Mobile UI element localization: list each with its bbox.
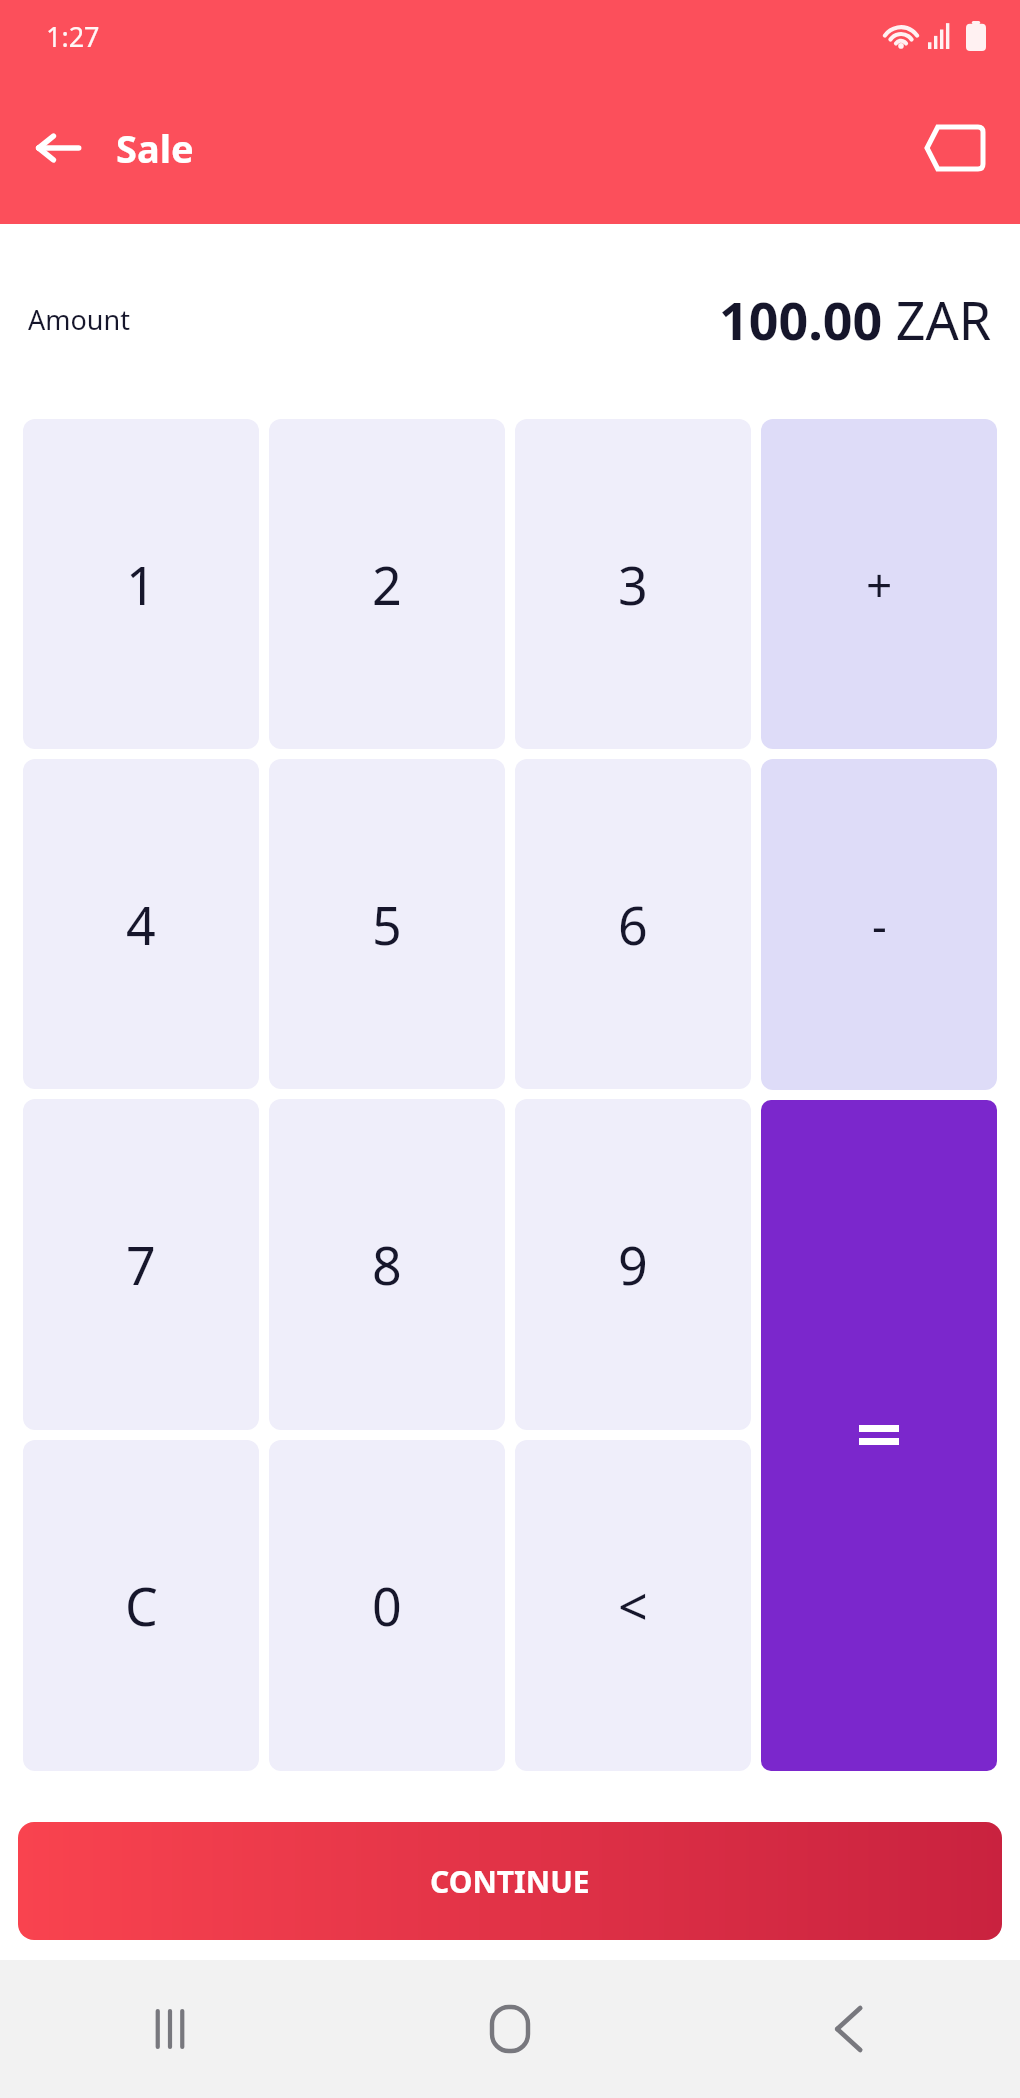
button[interactable]: +	[761, 419, 997, 749]
staticText: 3	[618, 549, 648, 620]
staticText: 1:27	[46, 18, 100, 55]
staticText: 9	[618, 1229, 648, 1300]
button[interactable]: Tag	[912, 106, 996, 190]
staticText: 6	[618, 889, 648, 960]
staticText: C	[125, 1570, 158, 1641]
button[interactable]: 6	[515, 759, 751, 1089]
staticText: Sale	[116, 122, 194, 174]
button[interactable]: 3	[515, 419, 751, 749]
staticText: CONTINUE	[430, 1861, 590, 1902]
button[interactable]: Home	[340, 1960, 680, 2098]
staticText: Amount	[28, 301, 130, 338]
staticText: 100.00 ZAR	[719, 284, 992, 355]
staticText: 5	[372, 889, 402, 960]
staticText: <	[618, 1570, 648, 1641]
staticText: 0	[372, 1570, 402, 1641]
button[interactable]: C	[23, 1440, 259, 1771]
button[interactable]: 4	[23, 759, 259, 1089]
button[interactable]: Back	[680, 1960, 1020, 2098]
staticText: +	[866, 553, 893, 616]
button[interactable]: 9	[515, 1099, 751, 1430]
staticText: 1	[126, 549, 156, 620]
button[interactable]: Back	[20, 110, 96, 186]
button[interactable]: Equals	[761, 1100, 997, 1771]
button[interactable]: <	[515, 1440, 751, 1771]
button[interactable]: 2	[269, 419, 505, 749]
staticText: 2	[372, 549, 402, 620]
button[interactable]: 1	[23, 419, 259, 749]
staticText: 4	[126, 889, 156, 960]
button[interactable]: 7	[23, 1099, 259, 1430]
staticText: 7	[126, 1229, 156, 1300]
button[interactable]: 0	[269, 1440, 505, 1771]
button[interactable]: CONTINUE	[18, 1822, 1002, 1940]
button[interactable]: -	[761, 759, 997, 1090]
button[interactable]: 5	[269, 759, 505, 1089]
button[interactable]: 8	[269, 1099, 505, 1430]
staticText: 8	[372, 1229, 402, 1300]
staticText: -	[872, 893, 887, 956]
button[interactable]: Recents	[0, 1960, 340, 2098]
